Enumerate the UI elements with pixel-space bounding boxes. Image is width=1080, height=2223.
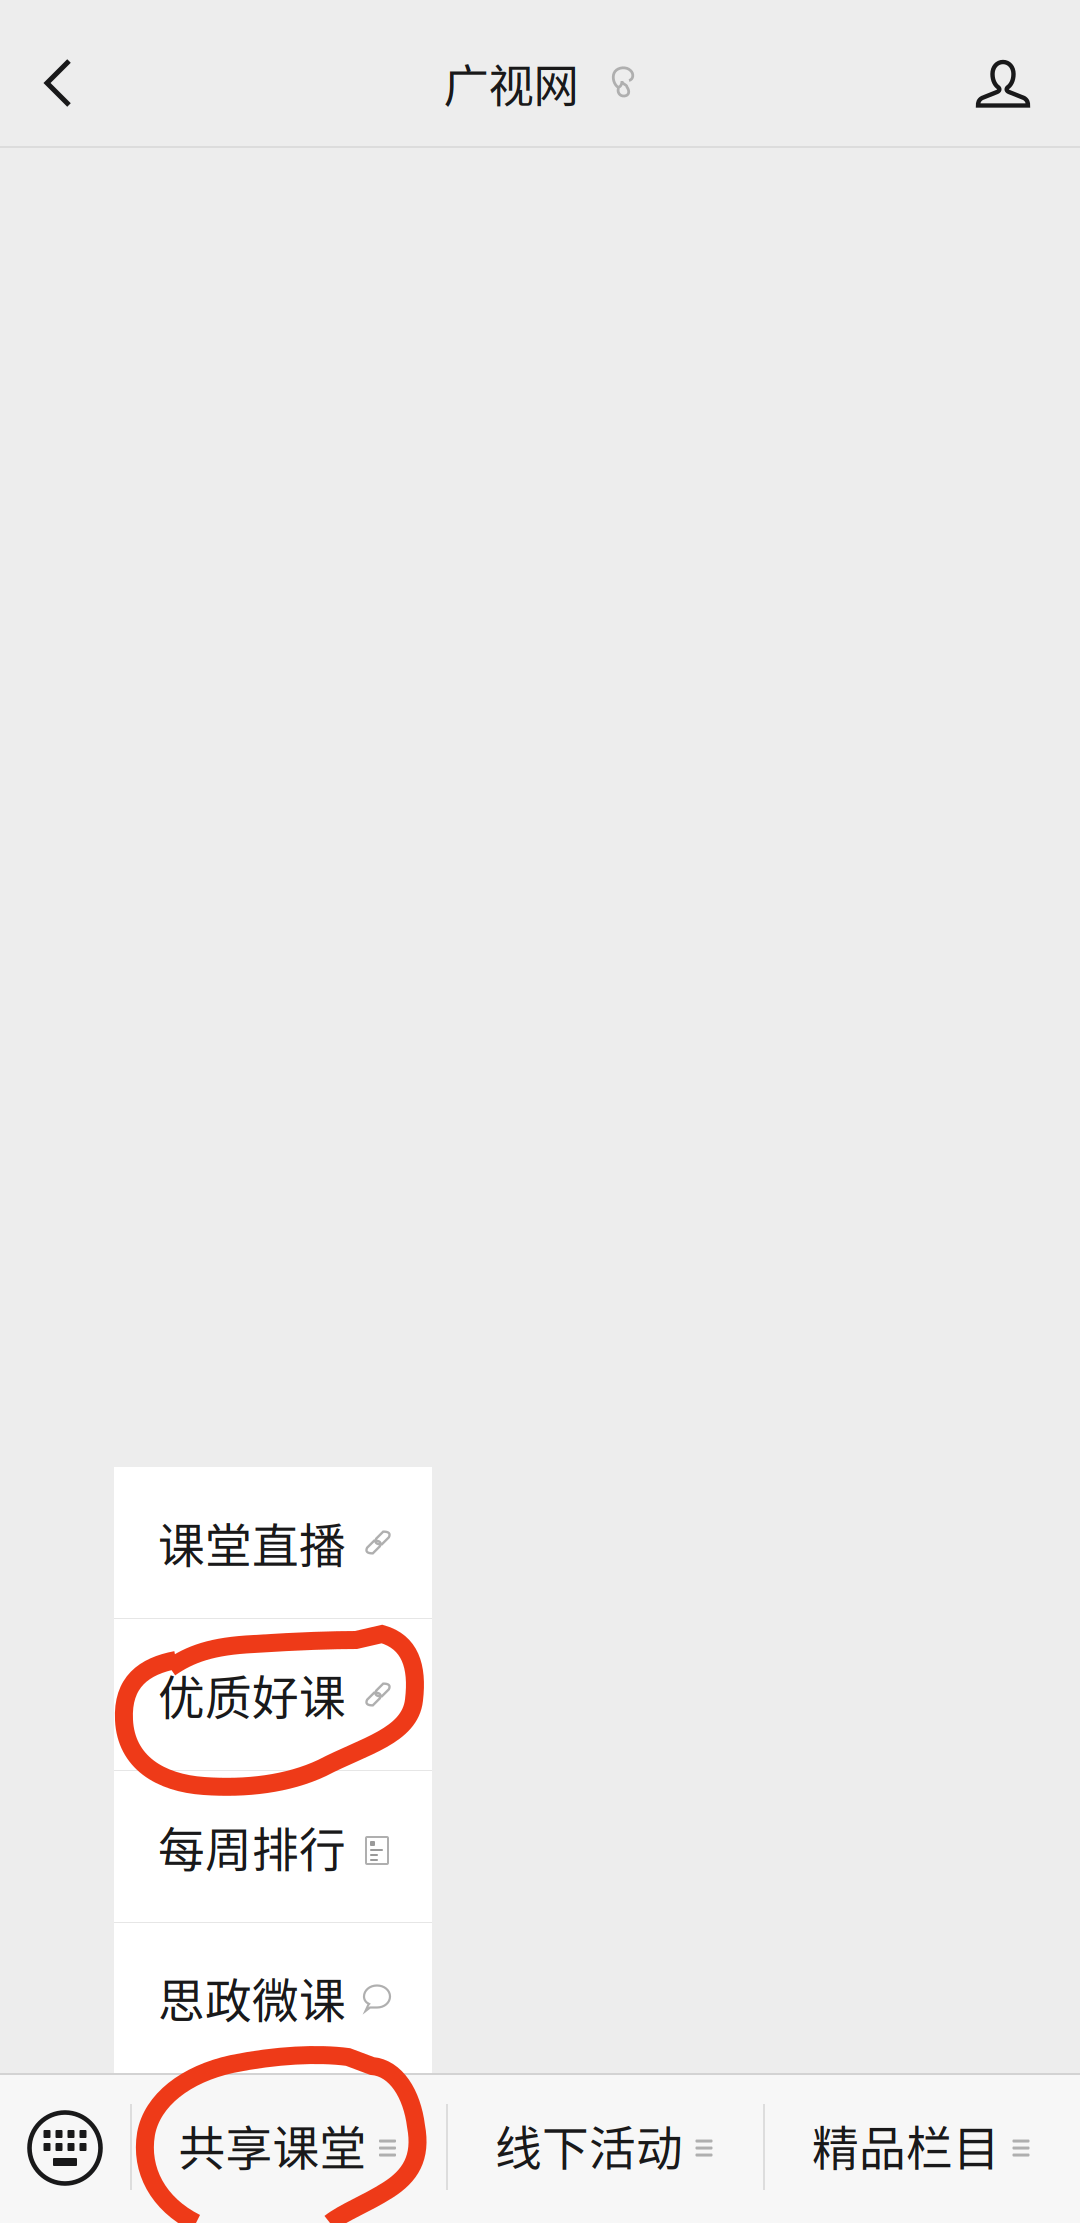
staticText: 课堂直播 [158, 1509, 346, 1576]
staticText: 共享课堂 [178, 2111, 366, 2179]
staticText: 线下活动 [495, 2111, 683, 2179]
staticText: 优质好课 [158, 1661, 346, 1728]
button[interactable]: 每周排行 [114, 1771, 432, 1922]
button[interactable]: Contacts [938, 9, 1068, 157]
staticText: 每周排行 [158, 1813, 346, 1880]
button[interactable]: Keyboard [0, 2073, 130, 2223]
button[interactable]: 优质好课 [114, 1619, 432, 1770]
button[interactable]: Back [0, 9, 116, 157]
button[interactable]: 精品栏目 [763, 2073, 1080, 2223]
button[interactable]: 思政微课 [114, 1923, 432, 2072]
button[interactable]: 课堂直播 [114, 1467, 432, 1618]
button[interactable]: 线下活动 [446, 2073, 763, 2223]
button[interactable]: 共享课堂 [130, 2073, 446, 2223]
staticText: 思政微课 [158, 1964, 346, 2031]
staticText: 广视网 [443, 50, 578, 116]
staticText: 精品栏目 [812, 2111, 1000, 2179]
